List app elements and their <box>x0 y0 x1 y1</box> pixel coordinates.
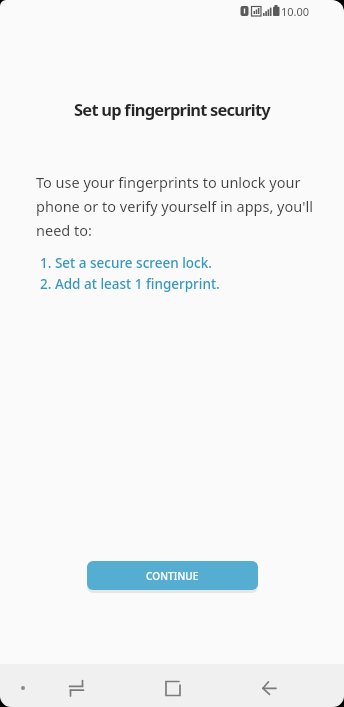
staticText: CONTINUE <box>146 569 199 583</box>
button[interactable]: CONTINUE <box>87 561 258 590</box>
button[interactable] <box>229 664 344 707</box>
staticText: 1. Set a secure screen lock. 2. Add at l… <box>40 254 220 293</box>
button[interactable] <box>114 664 229 707</box>
button[interactable] <box>0 664 114 707</box>
staticText: Set up fingerprint security <box>0 98 344 120</box>
staticText: 10.00 <box>281 4 310 19</box>
staticText: To use your fingerprints to unlock your … <box>36 172 313 240</box>
